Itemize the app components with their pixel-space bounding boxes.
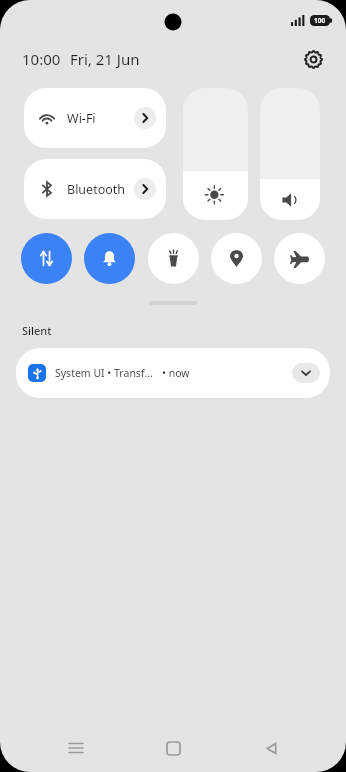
button[interactable]: Brightness [183, 88, 248, 220]
staticText: 100 [314, 16, 326, 25]
button[interactable]: Bluetooth [24, 159, 166, 219]
button[interactable]: Bluetooth details [134, 178, 156, 200]
button[interactable]: Expand notification [292, 363, 320, 383]
staticText: Bluetooth [67, 181, 126, 198]
button[interactable]: Volume [260, 88, 320, 220]
staticText: Fri, 21 Jun [70, 49, 140, 69]
button[interactable]: Airplane mode [274, 233, 325, 284]
button[interactable]: Sound [84, 233, 135, 284]
button[interactable]: Wi-Fi details [134, 107, 156, 129]
button[interactable]: Settings [298, 44, 328, 74]
button[interactable]: Mobile data [21, 233, 72, 284]
button[interactable]: Wi-Fi [24, 88, 166, 148]
button[interactable]: Flashlight [148, 233, 199, 284]
button[interactable]: Back [249, 726, 293, 770]
staticText: 10:00 [22, 49, 61, 69]
button[interactable]: Recents [54, 726, 98, 770]
button[interactable]: Location [211, 233, 262, 284]
staticText: Silent [22, 323, 52, 338]
staticText: • now [162, 366, 190, 380]
staticText: System UI • Transferring files via… [55, 366, 157, 380]
staticText: Wi-Fi [67, 110, 96, 127]
button[interactable]: System UI • Transferring files via… [16, 348, 330, 398]
button[interactable]: Home [151, 726, 195, 770]
